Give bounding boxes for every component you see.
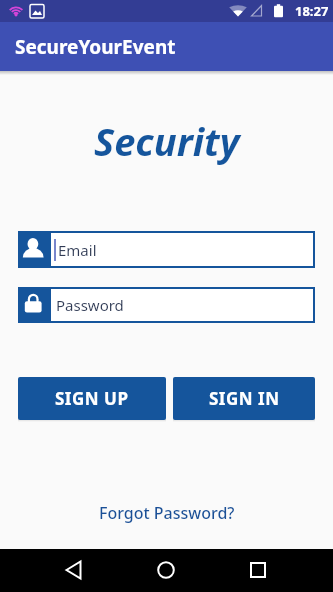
button[interactable] xyxy=(111,549,222,592)
staticText: SIGN IN xyxy=(209,387,280,410)
staticText: SecureYourEvent xyxy=(15,34,176,60)
button[interactable]: Email xyxy=(18,231,315,268)
button[interactable]: Forgot Password? xyxy=(99,502,235,524)
staticText: Email xyxy=(58,240,97,260)
button[interactable]: SIGN IN xyxy=(173,377,315,420)
button[interactable] xyxy=(0,549,111,592)
staticText: Password xyxy=(56,295,124,315)
staticText: SIGN UP xyxy=(55,387,129,410)
button[interactable]: Password xyxy=(18,287,315,323)
staticText: Security xyxy=(94,115,240,167)
button[interactable]: SIGN UP xyxy=(18,377,166,420)
staticText: 18:27 xyxy=(295,2,329,20)
button[interactable] xyxy=(222,549,333,592)
